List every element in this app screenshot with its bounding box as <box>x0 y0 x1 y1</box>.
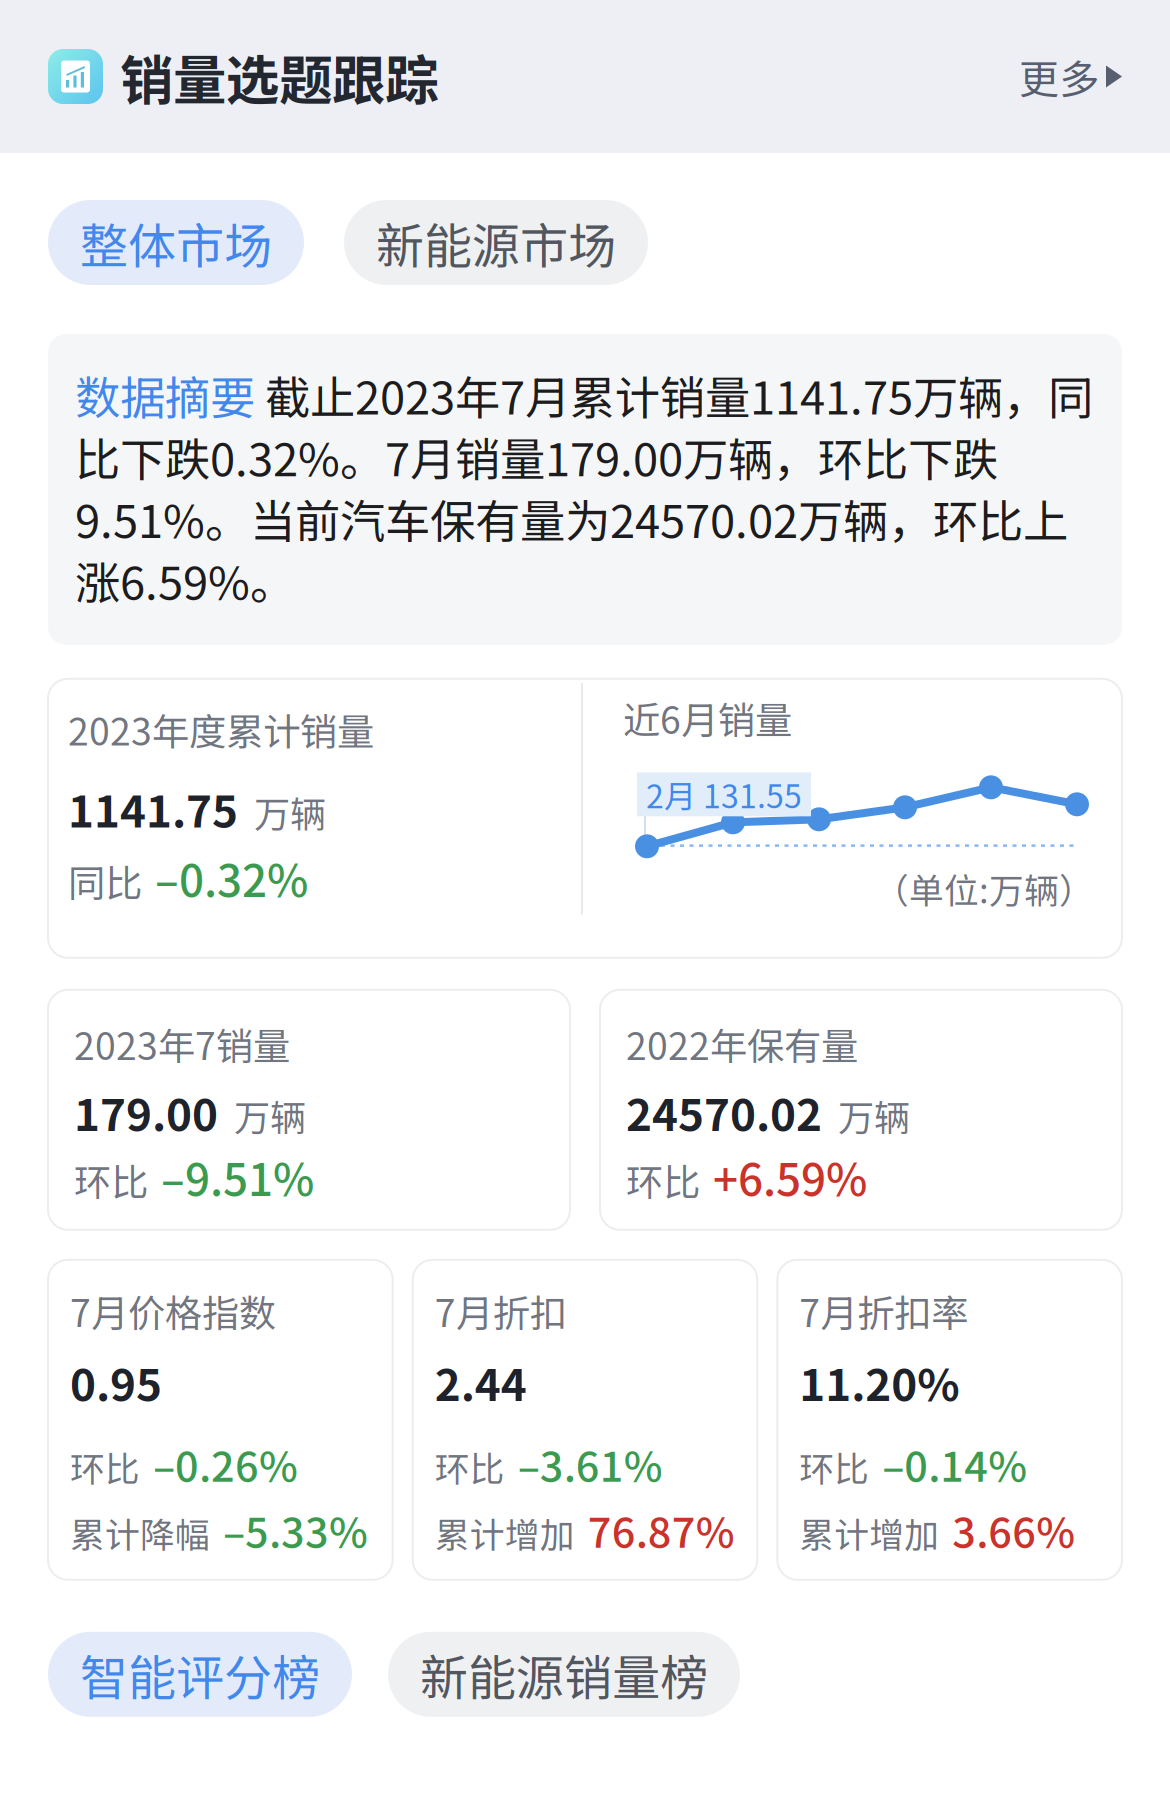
staticText: 万辆 <box>838 1089 910 1141</box>
staticText: 11.20% <box>799 1350 959 1414</box>
staticText: 2023年7销量 <box>74 1017 290 1071</box>
staticText: 2月 131.55 <box>646 771 802 817</box>
staticText: 万辆 <box>234 1089 306 1141</box>
staticText: （单位:万辆） <box>874 863 1094 913</box>
staticText: 新能源市场 <box>376 208 616 277</box>
button[interactable]: 整体市场 <box>48 200 304 285</box>
staticText: 7月折扣率 <box>799 1284 968 1338</box>
staticText: 累计降幅 <box>70 1508 210 1558</box>
button[interactable]: 2023年7销量 <box>48 990 570 1230</box>
staticText: 环比 <box>74 1153 148 1207</box>
staticText: +6.59% <box>713 1145 867 1209</box>
staticText: 累计增加 <box>435 1508 575 1558</box>
staticText: 销量选题跟踪 <box>120 38 438 115</box>
staticText: 7月折扣 <box>435 1284 567 1338</box>
staticText: 7月价格指数 <box>70 1284 276 1338</box>
staticText: 1141.75 <box>68 776 238 840</box>
staticText: –0.14% <box>882 1434 1027 1494</box>
staticText: 0.95 <box>70 1350 162 1414</box>
staticText: –9.51% <box>161 1145 314 1209</box>
staticText: –0.26% <box>153 1434 298 1494</box>
button[interactable]: 7月折扣 <box>413 1260 757 1580</box>
staticText: 更多 <box>1019 47 1099 105</box>
button[interactable]: 7月折扣率 <box>777 1260 1122 1580</box>
staticText: 环比 <box>626 1153 700 1207</box>
button[interactable]: 2023年度累计销量 <box>48 679 1122 958</box>
button[interactable]: 更多 <box>1019 27 1122 125</box>
staticText: 环比 <box>799 1442 869 1492</box>
staticText: –3.61% <box>518 1434 663 1494</box>
button[interactable]: 新能源销量榜 <box>388 1632 740 1717</box>
staticText: 近6月销量 <box>623 691 792 745</box>
staticText: 3.66% <box>952 1500 1075 1560</box>
button[interactable]: 智能评分榜 <box>48 1632 352 1717</box>
button[interactable]: 2022年保有量 <box>600 990 1122 1230</box>
staticText: 累计增加 <box>799 1508 939 1558</box>
staticText: 万辆 <box>254 786 326 838</box>
staticText: 24570.02 <box>626 1080 822 1144</box>
staticText: 2.44 <box>435 1350 527 1414</box>
staticText: 数据摘要 截止2023年7月累计销量1141.75万辆，同比下跌0.32%。7月… <box>75 364 1093 611</box>
staticText: 环比 <box>70 1442 140 1492</box>
staticText: –0.32% <box>155 846 308 910</box>
button[interactable]: 7月价格指数 <box>48 1260 393 1580</box>
staticText: –5.33% <box>223 1500 368 1560</box>
staticText: 新能源销量榜 <box>420 1640 708 1709</box>
staticText: 2022年保有量 <box>626 1017 858 1071</box>
staticText: 整体市场 <box>80 208 272 277</box>
staticText: 179.00 <box>74 1080 218 1144</box>
staticText: 环比 <box>435 1442 505 1492</box>
staticText: 76.87% <box>588 1500 735 1560</box>
staticText: 同比 <box>68 854 142 908</box>
staticText: 智能评分榜 <box>80 1640 320 1709</box>
button[interactable]: 新能源市场 <box>344 200 648 285</box>
staticText: 2023年度累计销量 <box>68 702 374 756</box>
